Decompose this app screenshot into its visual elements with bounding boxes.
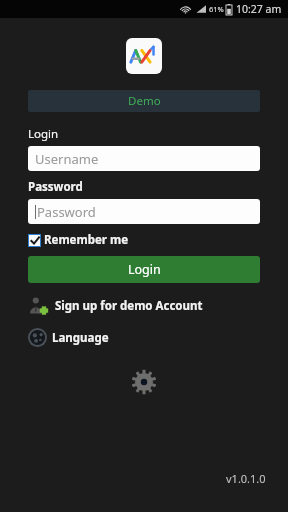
staticText: Password bbox=[37, 203, 96, 221]
button[interactable]: Demo bbox=[28, 90, 260, 112]
staticText: Language bbox=[52, 330, 109, 346]
button[interactable]: Remember me bbox=[28, 232, 129, 248]
staticText: Demo bbox=[128, 93, 161, 109]
button[interactable]: Settings bbox=[131, 369, 157, 395]
button[interactable]: Login bbox=[28, 256, 260, 283]
other: Language bbox=[28, 328, 47, 347]
staticText: 61% bbox=[209, 4, 224, 14]
staticText: Username bbox=[35, 150, 99, 168]
button[interactable]: Language bbox=[28, 328, 260, 347]
staticText: Sign up for demo Account bbox=[55, 298, 203, 314]
staticText: Login bbox=[28, 126, 59, 142]
button[interactable]: Password bbox=[28, 199, 260, 224]
staticText: v1.0.1.0 bbox=[226, 471, 266, 486]
other: Sign up bbox=[28, 295, 49, 316]
staticText: Remember me bbox=[44, 232, 129, 248]
staticText: Password bbox=[28, 179, 83, 195]
button[interactable]: Username bbox=[28, 146, 260, 171]
button[interactable]: Sign up bbox=[28, 295, 260, 316]
button[interactable]: AX1 logo bbox=[126, 38, 162, 74]
staticText: Login bbox=[128, 261, 161, 278]
staticText: 10:27 am bbox=[236, 2, 282, 16]
